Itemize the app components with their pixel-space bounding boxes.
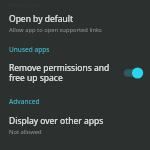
staticText: Not allowed: [9, 128, 42, 136]
staticText: Allow app to open supported links: [9, 26, 102, 34]
staticText: Open by default: [9, 13, 73, 25]
button[interactable]: Remove permissions toggle: [122, 65, 144, 81]
staticText: Remove permissions and free up space: [9, 62, 118, 84]
button[interactable]: Open by default: [0, 9, 150, 38]
button[interactable]: Remove permissions and free up space: [0, 58, 150, 88]
staticText: Display over other apps: [9, 115, 104, 127]
staticText: Unused apps: [9, 45, 50, 54]
button[interactable]: Display over other apps: [0, 111, 150, 140]
staticText: Advanced: [9, 97, 40, 106]
